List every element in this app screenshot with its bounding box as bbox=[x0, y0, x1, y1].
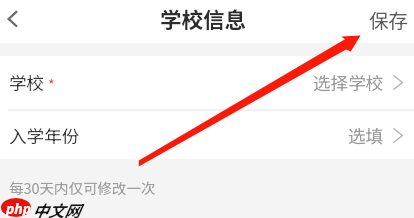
staticText: 学校 bbox=[9, 70, 45, 95]
button[interactable]: 学校 bbox=[0, 56, 414, 109]
staticText: 每30天内仅可修改一次 bbox=[9, 177, 156, 198]
button[interactable]: 保存 bbox=[355, 0, 414, 43]
staticText: php bbox=[6, 199, 32, 218]
staticText: 学校信息 bbox=[160, 3, 247, 34]
staticText: 入学年份 bbox=[9, 123, 80, 148]
button[interactable]: Back bbox=[0, 0, 30, 43]
staticText: 选填 bbox=[348, 123, 384, 148]
staticText: 保存 bbox=[369, 5, 409, 33]
button[interactable]: 入学年份 bbox=[0, 111, 414, 159]
staticText: * bbox=[48, 74, 55, 94]
staticText: 中文网 bbox=[32, 198, 81, 218]
staticText: 选择学校 bbox=[313, 70, 384, 95]
